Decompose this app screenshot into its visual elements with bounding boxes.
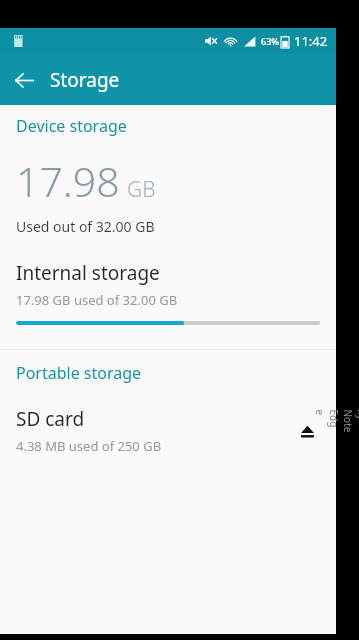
staticText: Internal storage (16, 260, 160, 286)
staticText: Storage (50, 67, 120, 93)
staticText: 63% (261, 35, 279, 47)
button[interactable]: Eject SD card (290, 414, 324, 448)
staticText: Device storage (16, 115, 127, 137)
staticText: SD card (16, 406, 85, 432)
button[interactable]: Back (0, 56, 48, 104)
button[interactable]: SD card (0, 404, 336, 461)
staticText: Galaxy Note Edge (312, 409, 359, 432)
button[interactable]: Internal storage (0, 258, 336, 329)
staticText: Used out of 32.00 GB (16, 217, 155, 236)
staticText: Portable storage (16, 362, 142, 384)
staticText: 4.38 MB used of 250 GB (16, 437, 162, 455)
staticText: GB (127, 175, 156, 204)
staticText: 11:42 (294, 32, 328, 50)
staticText: 17.98 (16, 153, 120, 209)
staticText: 17.98 GB used of 32.00 GB (16, 291, 178, 309)
